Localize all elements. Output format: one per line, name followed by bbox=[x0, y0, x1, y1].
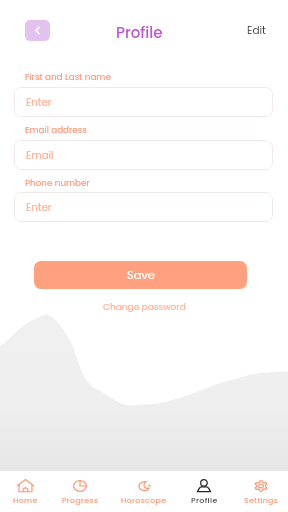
button[interactable]: Home bbox=[0, 475, 54, 508]
staticText: Enter bbox=[26, 95, 52, 109]
staticText: Progress bbox=[62, 495, 99, 506]
button[interactable]: Profile bbox=[175, 475, 233, 508]
staticText: Profile bbox=[116, 22, 163, 43]
button[interactable]: Enter bbox=[14, 192, 273, 222]
button[interactable]: Save bbox=[34, 261, 247, 289]
button[interactable]: Edit bbox=[239, 17, 274, 44]
button[interactable]: Progress bbox=[51, 475, 109, 508]
staticText: Profile bbox=[191, 495, 218, 506]
staticText: Save bbox=[127, 267, 155, 283]
button[interactable]: Horoscope bbox=[115, 475, 173, 508]
staticText: Settings bbox=[244, 495, 279, 506]
staticText: First and Last name bbox=[25, 71, 111, 83]
staticText: Edit bbox=[247, 23, 266, 38]
staticText: Horoscope bbox=[121, 495, 167, 506]
staticText: Phone number bbox=[25, 177, 90, 189]
staticText: Email address bbox=[25, 124, 87, 136]
staticText: Home bbox=[13, 495, 38, 506]
staticText: Email bbox=[26, 148, 54, 162]
staticText: Enter bbox=[26, 200, 52, 214]
button[interactable]: Change password bbox=[97, 298, 192, 317]
button[interactable]: Enter bbox=[14, 87, 273, 117]
button[interactable]: Email bbox=[14, 140, 273, 170]
staticText: Change password bbox=[103, 301, 186, 314]
button[interactable]: Settings bbox=[232, 475, 288, 508]
button[interactable]: Back bbox=[25, 20, 50, 41]
